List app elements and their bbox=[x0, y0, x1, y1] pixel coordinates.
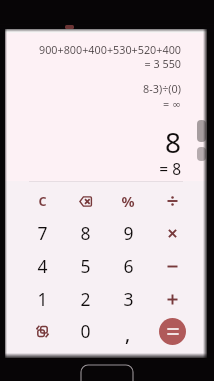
button[interactable]: C bbox=[20, 185, 64, 217]
button[interactable]: , bbox=[106, 315, 150, 347]
staticText: = 3 550 bbox=[5, 56, 181, 71]
staticText: 5 bbox=[80, 254, 91, 278]
button[interactable]: % bbox=[106, 185, 150, 217]
staticText: 8 bbox=[5, 123, 181, 161]
button[interactable]: 2 bbox=[63, 283, 107, 315]
button[interactable]: Equals bbox=[150, 315, 194, 347]
button[interactable]: Multiply bbox=[150, 217, 194, 249]
staticText: = ∞ bbox=[5, 96, 181, 111]
staticText: 6 bbox=[123, 254, 134, 278]
staticText: = 8 bbox=[5, 158, 181, 179]
button[interactable]: 4 bbox=[20, 250, 64, 282]
staticText: 3 bbox=[123, 287, 134, 311]
button[interactable]: 7 bbox=[20, 217, 64, 249]
button[interactable]: 6 bbox=[106, 250, 150, 282]
staticText: 2 bbox=[80, 287, 91, 311]
staticText: 900+800+400+530+520+400 bbox=[5, 42, 181, 57]
button[interactable]: Backspace bbox=[63, 185, 107, 217]
staticText: 8-3)÷(0) bbox=[5, 81, 181, 96]
button[interactable]: Add bbox=[150, 283, 194, 315]
staticText: 7 bbox=[37, 221, 48, 245]
staticText: 1 bbox=[37, 287, 48, 311]
button[interactable]: Subtract bbox=[150, 250, 194, 282]
button[interactable]: 9 bbox=[106, 217, 150, 249]
staticText: , bbox=[125, 321, 131, 347]
button[interactable]: 8 bbox=[63, 217, 107, 249]
staticText: 0 bbox=[80, 319, 91, 343]
staticText: 8 bbox=[80, 221, 91, 245]
button[interactable]: 5 bbox=[63, 250, 107, 282]
staticText: C bbox=[38, 193, 47, 210]
staticText: 9 bbox=[123, 221, 134, 245]
staticText: 4 bbox=[37, 254, 48, 278]
button[interactable]: Unit converter bbox=[20, 315, 64, 347]
button[interactable]: 1 bbox=[20, 283, 64, 315]
button[interactable]: Divide bbox=[150, 185, 194, 217]
staticText: % bbox=[121, 191, 135, 211]
button[interactable]: 3 bbox=[106, 283, 150, 315]
button[interactable]: 0 bbox=[63, 315, 107, 347]
